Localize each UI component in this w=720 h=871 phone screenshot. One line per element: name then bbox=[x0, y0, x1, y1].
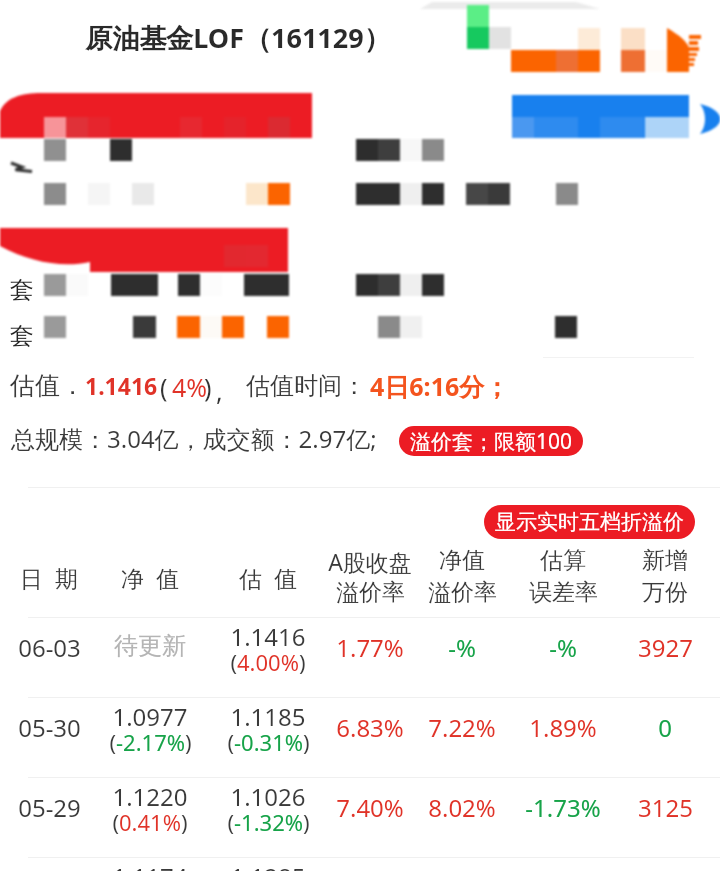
staticText: 4% bbox=[172, 370, 208, 404]
staticText: (0.41%) bbox=[112, 807, 188, 837]
staticText: 套 bbox=[10, 275, 34, 305]
staticText: -% bbox=[448, 631, 476, 664]
staticText: A股收盘 bbox=[328, 546, 412, 577]
staticText: -1.73% bbox=[525, 791, 601, 824]
staticText: 总规模：3.04亿，成交额：2.97亿; bbox=[11, 422, 377, 455]
staticText: 8.02% bbox=[428, 791, 496, 824]
staticText: 待更新 bbox=[114, 631, 186, 661]
staticText: 1.1285 bbox=[230, 860, 306, 871]
staticText: 估值时间： bbox=[246, 371, 366, 401]
staticText: 0 bbox=[658, 711, 672, 744]
button[interactable]: 显示实时五档折溢价 bbox=[484, 505, 695, 539]
staticText: (-1.32%) bbox=[227, 807, 310, 837]
staticText: 4日6:16分； bbox=[370, 369, 510, 403]
staticText: 净 值 bbox=[121, 562, 179, 593]
staticText: 溢价率 bbox=[336, 578, 405, 607]
staticText: 1.1174 bbox=[112, 860, 188, 871]
staticText: 6.83% bbox=[336, 711, 404, 744]
staticText: ( bbox=[160, 370, 168, 404]
button[interactable] bbox=[0, 778, 720, 857]
staticText: 估算 bbox=[540, 546, 586, 575]
staticText: 显示实时五档折溢价 bbox=[495, 509, 684, 535]
staticText: 1.1185 bbox=[230, 700, 306, 733]
staticText: (-2.17%) bbox=[109, 727, 192, 757]
staticText: 估 值 bbox=[239, 562, 297, 593]
staticText: 估值． bbox=[10, 370, 85, 401]
staticText: 05-30 bbox=[18, 711, 81, 744]
staticText: 7.40% bbox=[336, 791, 404, 824]
staticText: 原油基金LOF（161129） bbox=[85, 19, 391, 56]
staticText: (-0.31%) bbox=[227, 727, 310, 757]
staticText: 1.1416 bbox=[85, 370, 158, 401]
staticText: 净值 bbox=[439, 546, 485, 575]
staticText: 1.0977 bbox=[112, 700, 188, 733]
staticText: 万份 bbox=[642, 578, 688, 607]
button[interactable] bbox=[0, 618, 720, 697]
staticText: 05-29 bbox=[18, 791, 81, 824]
staticText: 3927 bbox=[638, 631, 693, 664]
staticText: 1.1220 bbox=[112, 780, 188, 813]
button[interactable] bbox=[0, 698, 720, 777]
staticText: 溢价套；限额100 bbox=[410, 427, 573, 456]
staticText: (4.00%) bbox=[230, 647, 306, 677]
staticText: 1.1416 bbox=[230, 620, 306, 653]
staticText: 套 bbox=[10, 321, 34, 351]
staticText: 3125 bbox=[638, 791, 693, 824]
staticText: 溢价率 bbox=[428, 578, 497, 607]
staticText: 06-03 bbox=[18, 631, 81, 664]
staticText: , bbox=[216, 374, 223, 408]
staticText: 7.22% bbox=[428, 711, 496, 744]
staticText: 日 期 bbox=[20, 562, 78, 593]
button[interactable]: 溢价套；限额100 bbox=[399, 426, 583, 456]
staticText: 1.89% bbox=[529, 711, 597, 744]
staticText: ) bbox=[204, 370, 212, 404]
staticText: 新增 bbox=[642, 546, 688, 575]
staticText: 误差率 bbox=[529, 578, 598, 607]
staticText: 1.1026 bbox=[230, 780, 306, 813]
staticText: 1.77% bbox=[336, 631, 404, 664]
staticText: -% bbox=[549, 631, 577, 664]
